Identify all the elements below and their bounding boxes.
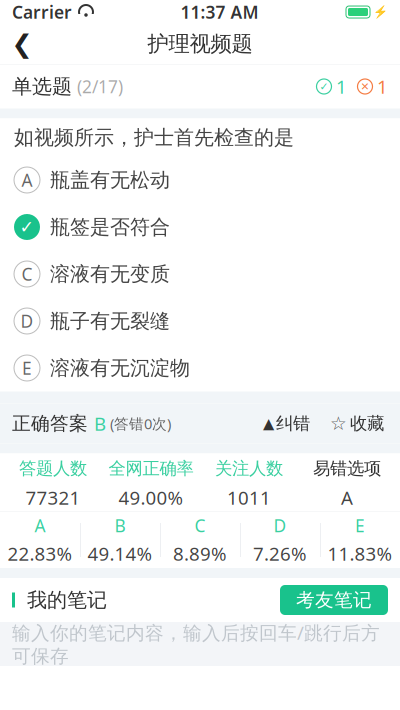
button[interactable]: ▲ [259,406,314,440]
staticText: B [114,514,125,537]
staticText: Carrier [12,0,72,23]
staticText: 1011 [227,485,271,510]
staticText: E [22,356,32,379]
staticText: 全网正确率 [108,458,193,479]
staticText: 瓶盖有无松动 [50,168,170,192]
staticText: D [20,309,33,332]
staticText: ❮ [11,30,32,58]
staticText: 49.00% [118,485,183,510]
staticText: 溶液有无变质 [50,262,170,286]
button[interactable]: C [0,250,400,297]
staticText: ▲ [263,415,274,432]
button[interactable]: 考友笔记 [280,585,388,615]
staticText: 纠错 [276,413,310,434]
staticText: A [34,514,45,537]
staticText: 瓶子有无裂缝 [50,309,170,333]
button[interactable]: D [0,297,400,344]
staticText: 49.14% [87,541,152,566]
staticText: 77321 [25,485,80,510]
staticText: ✕ [360,80,369,92]
staticText: ✓ [319,80,328,92]
staticText: (答错0次) [106,414,171,433]
staticText: 如视频所示，护士首先检查的是 [14,125,294,150]
staticText: 11.83% [327,541,392,566]
staticText: 1 [336,74,347,99]
staticText: ✓ [19,217,34,237]
staticText: ⚡ [373,5,388,19]
staticText: ☆ [330,413,347,434]
staticText: 7.26% [253,541,307,566]
staticText: 考友笔记 [296,588,372,611]
staticText: C [21,262,32,285]
button[interactable]: ✓ [0,203,400,250]
button[interactable]: Back [0,24,44,64]
button[interactable]: ☆ [326,406,388,440]
staticText: D [273,514,286,537]
staticText: 护理视频题 [147,31,252,57]
staticText: 单选题 [12,74,72,99]
button[interactable]: A [0,156,400,203]
staticText: 8.89% [173,541,227,566]
staticText: 易错选项 [313,458,381,479]
staticText: 22.83% [7,541,72,566]
button[interactable]: E [0,344,400,391]
staticText: 收藏 [350,413,384,434]
staticText: 1 [377,74,388,99]
staticText: (2/17) [72,75,123,98]
staticText: 答题人数 [19,458,87,479]
staticText: A [21,168,32,191]
staticText: 关注人数 [215,458,283,479]
staticText: A [341,485,353,510]
staticText: B [94,411,106,436]
staticText: 输入你的笔记内容，输入后按回车/跳行后方可保存 [12,620,380,668]
staticText: E [355,514,365,537]
staticText: 瓶签是否符合 [50,215,170,239]
staticText: C [194,514,205,537]
staticText: 溶液有无沉淀物 [50,356,190,380]
button[interactable]: 输入你的笔记内容，输入后按回车/跳行后方可保存 [0,622,400,666]
staticText: 11:37 AM [180,0,258,23]
staticText: 正确答案 [12,412,94,435]
staticText: 我的笔记 [15,588,107,612]
